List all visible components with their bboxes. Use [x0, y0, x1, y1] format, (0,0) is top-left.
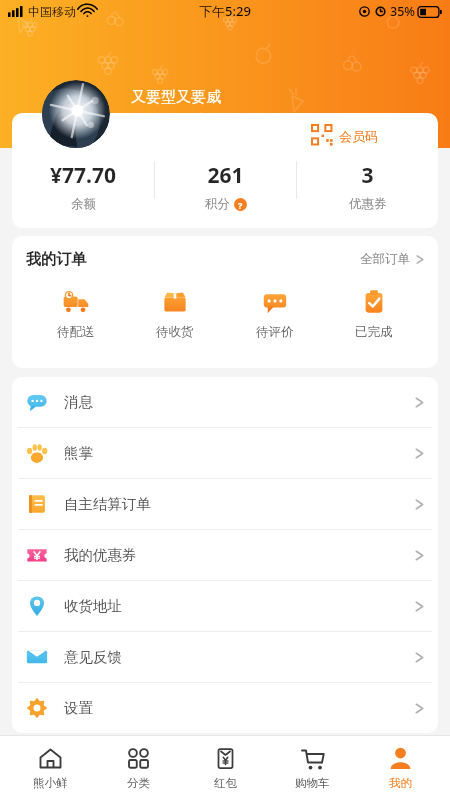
- button[interactable]: 我的优惠券: [12, 530, 438, 581]
- button[interactable]: 设置: [12, 683, 438, 733]
- staticText: 意见反馈: [64, 648, 122, 666]
- button[interactable]: 已完成: [339, 288, 409, 340]
- button[interactable]: 意见反馈: [12, 632, 438, 683]
- button[interactable]: 待配送: [41, 288, 111, 340]
- button[interactable]: 熊掌: [12, 428, 438, 479]
- staticText: 优惠券: [349, 196, 387, 212]
- button[interactable]: 消息: [12, 377, 438, 428]
- staticText: 35%: [390, 3, 415, 20]
- staticText: 会员码: [339, 128, 378, 144]
- staticText: 又要型又要威: [131, 88, 221, 107]
- staticText: 全部订单: [360, 251, 410, 267]
- staticText: 待配送: [57, 324, 95, 340]
- button[interactable]: ¥77.70: [12, 161, 154, 212]
- staticText: 消息: [64, 393, 93, 411]
- button[interactable]: 全部订单: [360, 251, 424, 267]
- staticText: 余额: [71, 196, 96, 212]
- staticText: 熊小鲜: [33, 776, 68, 790]
- staticText: 分类: [127, 776, 150, 790]
- button[interactable]: 3: [297, 161, 438, 212]
- button[interactable]: 购物车: [275, 746, 349, 790]
- staticText: 自主结算订单: [64, 495, 151, 513]
- staticText: 收货地址: [64, 597, 122, 615]
- staticText: 待评价: [256, 324, 294, 340]
- staticText: 熊掌: [64, 444, 93, 462]
- button[interactable]: 会员码: [312, 125, 378, 146]
- staticText: 中国移动: [28, 4, 76, 19]
- staticText: ?: [238, 199, 243, 211]
- staticText: 我的订单: [26, 250, 86, 269]
- button[interactable]: Profile photo: [42, 80, 110, 148]
- button[interactable]: 261: [155, 161, 296, 212]
- staticText: 待收货: [156, 324, 194, 340]
- staticText: 积分: [205, 196, 230, 212]
- button[interactable]: 收货地址: [12, 581, 438, 632]
- staticText: 261: [207, 161, 244, 190]
- button[interactable]: 自主结算订单: [12, 479, 438, 530]
- staticText: 我的: [389, 776, 412, 790]
- button[interactable]: 分类: [101, 746, 175, 790]
- button[interactable]: 待收货: [140, 288, 210, 340]
- staticText: 购物车: [295, 776, 330, 790]
- staticText: 3: [361, 161, 374, 190]
- button[interactable]: 待评价: [240, 288, 310, 340]
- staticText: 设置: [64, 699, 93, 717]
- staticText: ¥77.70: [50, 161, 116, 190]
- button[interactable]: 熊小鲜: [13, 746, 87, 790]
- staticText: 已完成: [355, 324, 393, 340]
- button[interactable]: 我的: [363, 746, 437, 790]
- staticText: 红包: [214, 776, 237, 790]
- staticText: 下午5:29: [199, 2, 251, 20]
- staticText: 我的优惠券: [64, 546, 137, 564]
- button[interactable]: 红包: [188, 746, 262, 790]
